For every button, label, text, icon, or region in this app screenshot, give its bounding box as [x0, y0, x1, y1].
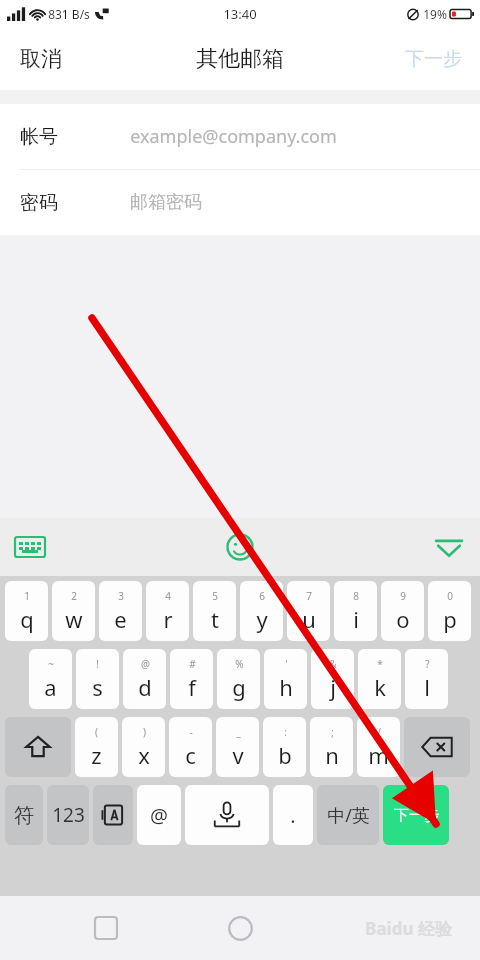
staticText: 9: [400, 589, 406, 603]
button[interactable]: 取消: [0, 32, 82, 86]
button[interactable]: 下一步: [383, 785, 449, 845]
staticText: x: [138, 740, 150, 770]
staticText: _: [236, 725, 241, 739]
staticText: p: [443, 604, 457, 634]
staticText: g: [232, 672, 246, 702]
button[interactable]: 1: [5, 581, 48, 641]
staticText: y: [256, 604, 268, 634]
button[interactable]: 0: [428, 581, 471, 641]
staticText: a: [44, 672, 57, 702]
staticText: h: [279, 672, 293, 702]
button[interactable]: ;: [310, 717, 353, 777]
staticText: ?: [425, 657, 430, 671]
staticText: Baidu 经验: [365, 917, 452, 940]
button[interactable]: 密码: [0, 170, 480, 235]
button[interactable]: Home: [218, 906, 262, 950]
button[interactable]: @: [137, 785, 181, 845]
button[interactable]: ): [122, 717, 165, 777]
button[interactable]: 8: [334, 581, 377, 641]
button[interactable]: ?: [405, 649, 448, 709]
staticText: c: [185, 740, 196, 770]
staticText: l: [424, 672, 430, 702]
button[interactable]: @: [123, 649, 166, 709]
staticText: 中/英: [327, 803, 370, 828]
staticText: 13:40: [223, 5, 257, 23]
staticText: 831 B/s: [48, 6, 90, 22]
staticText: k: [374, 672, 386, 702]
button[interactable]: .: [273, 785, 313, 845]
staticText: o: [396, 604, 410, 634]
staticText: j: [330, 672, 336, 702]
staticText: (: [95, 725, 98, 739]
button[interactable]: ~: [29, 649, 72, 709]
button[interactable]: -: [169, 717, 212, 777]
button[interactable]: *: [358, 649, 401, 709]
staticText: 帐号: [20, 125, 58, 149]
staticText: q: [20, 604, 34, 634]
button[interactable]: 4: [146, 581, 189, 641]
button[interactable]: :: [263, 717, 306, 777]
button[interactable]: Language: [93, 785, 133, 845]
button[interactable]: #: [170, 649, 213, 709]
staticText: !: [96, 657, 99, 671]
staticText: t: [211, 604, 219, 634]
staticText: v: [232, 740, 244, 770]
button[interactable]: Backspace: [404, 717, 470, 777]
button[interactable]: Hide keyboard: [434, 536, 464, 558]
button[interactable]: 帐号: [0, 104, 480, 169]
button[interactable]: Keyboard layout: [14, 535, 46, 559]
staticText: @: [150, 802, 168, 829]
staticText: ): [143, 725, 146, 739]
button[interactable]: 7: [287, 581, 330, 641]
button[interactable]: 中/英: [317, 785, 379, 845]
staticText: 邮箱密码: [130, 191, 202, 214]
staticText: 123: [52, 802, 85, 828]
staticText: b: [278, 740, 292, 770]
staticText: 符: [14, 803, 34, 828]
button[interactable]: (: [75, 717, 118, 777]
staticText: f: [188, 672, 196, 702]
button[interactable]: 123: [47, 785, 89, 845]
button[interactable]: 符: [5, 785, 43, 845]
staticText: :: [284, 725, 287, 739]
staticText: %: [235, 657, 244, 671]
button[interactable]: Emoji: [226, 533, 254, 561]
button[interactable]: 5: [193, 581, 236, 641]
button[interactable]: 3: [99, 581, 142, 641]
staticText: 0: [447, 589, 453, 603]
button[interactable]: 2: [52, 581, 95, 641]
button[interactable]: /: [357, 717, 400, 777]
staticText: 4: [165, 589, 171, 603]
button[interactable]: %: [217, 649, 260, 709]
staticText: 其他邮箱: [196, 45, 284, 73]
button[interactable]: Shift: [5, 717, 71, 777]
staticText: e: [114, 604, 127, 634]
staticText: n: [325, 740, 339, 770]
staticText: 7: [306, 589, 312, 603]
staticText: @: [141, 657, 150, 671]
button[interactable]: ': [264, 649, 307, 709]
staticText: m: [368, 740, 389, 770]
button[interactable]: &: [311, 649, 354, 709]
staticText: 3: [118, 589, 124, 603]
staticText: .: [290, 802, 296, 829]
staticText: 下一步: [394, 806, 439, 825]
staticText: /: [377, 725, 381, 739]
staticText: 2: [71, 589, 77, 603]
staticText: ~: [48, 657, 54, 671]
staticText: ': [285, 657, 288, 671]
staticText: d: [138, 672, 152, 702]
staticText: 密码: [20, 191, 58, 215]
staticText: 1: [24, 589, 30, 603]
button[interactable]: !: [76, 649, 119, 709]
button[interactable]: Space / voice input: [185, 785, 269, 845]
button[interactable]: Recents: [86, 908, 126, 948]
button[interactable]: 6: [240, 581, 283, 641]
staticText: z: [91, 740, 102, 770]
button[interactable]: 9: [381, 581, 424, 641]
button[interactable]: _: [216, 717, 259, 777]
staticText: &: [329, 657, 337, 671]
staticText: #: [189, 657, 196, 671]
staticText: 下一步: [405, 47, 462, 71]
button[interactable]: 下一步: [387, 33, 480, 85]
